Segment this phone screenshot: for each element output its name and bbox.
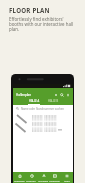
- staticText: Programm: [26, 179, 37, 183]
- button[interactable]: More options: [66, 93, 70, 97]
- staticText: Startseite: [14, 179, 25, 182]
- staticText: Effortlessly find exhibitors' booths wit…: [9, 16, 74, 32]
- button[interactable]: Programm: [26, 174, 37, 183]
- staticText: Name oder Standnummer suchen: [21, 107, 64, 111]
- button[interactable]: HALLE A: [26, 99, 42, 105]
- staticText: Mehr: [64, 179, 70, 182]
- staticText: HALLE A: [29, 99, 40, 103]
- button[interactable]: Mehr: [61, 174, 72, 182]
- button[interactable]: HALLE B: [45, 99, 61, 103]
- button[interactable]: Close: [54, 93, 58, 97]
- button[interactable]: Search: [60, 93, 64, 97]
- button[interactable]: Startseite: [14, 174, 25, 182]
- button[interactable]: Aussteller: [38, 174, 49, 183]
- staticText: FLOOR PLAN: [9, 6, 50, 14]
- staticText: Hallenplan: [49, 179, 60, 183]
- staticText: Aussteller: [38, 179, 49, 183]
- button[interactable]: Hallenplan: [49, 174, 60, 183]
- staticText: HALLE B: [48, 99, 59, 103]
- staticText: Hallenplan: [16, 93, 32, 97]
